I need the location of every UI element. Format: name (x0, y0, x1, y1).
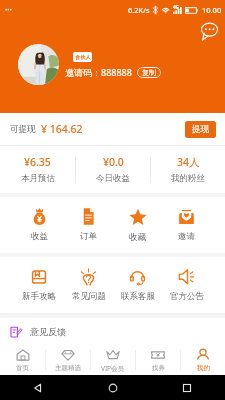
button[interactable]: 常见问题 (64, 257, 113, 313)
staticText: 首页 (16, 364, 29, 372)
staticText: ¥6.35 (24, 155, 51, 169)
staticText: 复制 (142, 68, 156, 77)
staticText: 我的粉丝 (171, 173, 205, 184)
button[interactable]: 订单 (64, 197, 113, 253)
staticText: VIP会员 (101, 364, 125, 373)
button[interactable]: 找券 (136, 345, 180, 375)
button[interactable]: 官方公告 (162, 257, 211, 313)
staticText: 我的 (197, 364, 210, 372)
button[interactable]: 收益 (14, 197, 64, 253)
button[interactable]: Avatar (18, 44, 59, 85)
staticText: ¥ 164.62 (41, 122, 83, 136)
button[interactable]: 首页 (0, 345, 45, 375)
button[interactable]: 合伙人 (73, 52, 92, 62)
button[interactable]: Messages (199, 22, 218, 41)
button[interactable]: 邀请 (162, 197, 211, 253)
button[interactable]: ¥0.0 (76, 146, 150, 193)
staticText: 意见反馈 (30, 326, 66, 337)
button[interactable]: 新手攻略 (14, 257, 64, 313)
staticText: 10.00 (202, 5, 222, 15)
staticText: ¥0.0 (103, 155, 124, 169)
button[interactable]: 意见反馈 (0, 318, 225, 345)
staticText: 找券 (152, 364, 165, 372)
staticText: 4G (173, 4, 179, 10)
button[interactable]: 联系客服 (113, 257, 162, 313)
staticText: 常见问题 (72, 291, 106, 302)
staticText: 34人 (177, 155, 200, 169)
staticText: 主题精选 (55, 364, 81, 372)
staticText: 联系客服 (121, 291, 155, 302)
button[interactable]: 主题精选 (46, 345, 90, 375)
button[interactable]: 提现 (185, 121, 216, 138)
button[interactable]: 收藏 (113, 197, 162, 253)
staticText: 收益 (31, 231, 48, 242)
staticText: 可提现 (10, 124, 36, 135)
staticText: 邀请码：888888 (65, 66, 132, 78)
staticText: 官方公告 (170, 291, 204, 302)
staticText: 合伙人 (75, 54, 91, 61)
button[interactable]: 复制 (137, 67, 161, 78)
button[interactable]: 我的 (181, 345, 225, 375)
button[interactable]: 34人 (151, 146, 225, 193)
staticText: 本月预估 (21, 173, 55, 184)
staticText: 今日收益 (96, 173, 130, 184)
staticText: 新手攻略 (22, 291, 56, 302)
staticText: 提现 (192, 124, 209, 135)
button[interactable]: VIP会员 (91, 345, 135, 375)
staticText: 订单 (80, 231, 97, 242)
staticText: 收藏 (129, 232, 146, 243)
staticText: 6.2K/s (128, 5, 150, 15)
button[interactable]: Home (105, 380, 121, 396)
button[interactable]: Back (30, 380, 46, 396)
staticText: 邀请 (178, 231, 195, 242)
button[interactable]: ¥6.35 (0, 146, 75, 193)
staticText: ••• (5, 6, 12, 14)
button[interactable]: Recents (179, 380, 195, 396)
